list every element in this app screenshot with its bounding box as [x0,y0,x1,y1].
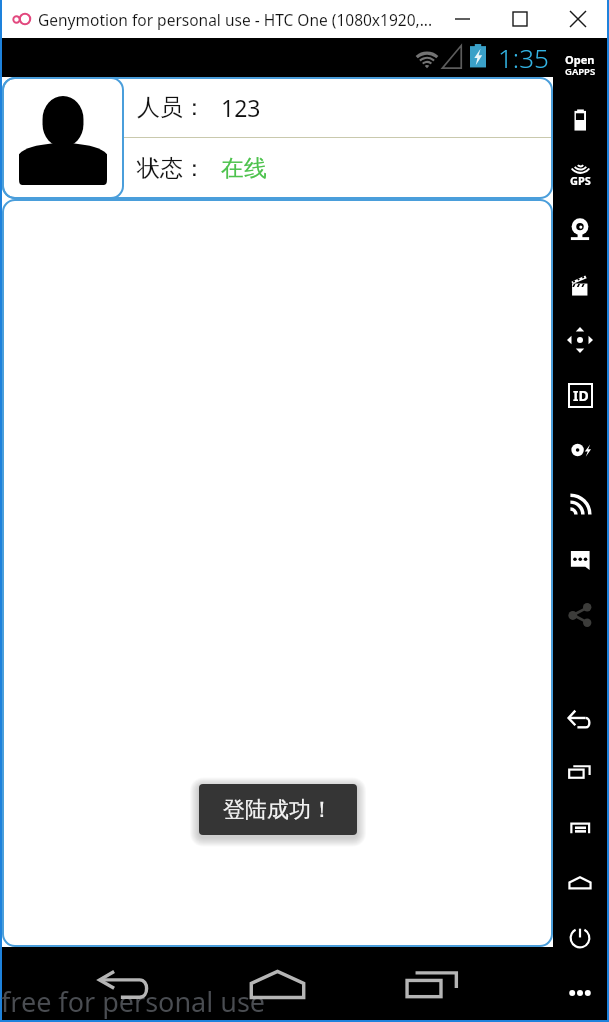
staticText: 在线 [221,154,267,183]
button[interactable]: Messages [553,533,607,587]
staticText: Genymotion for personal use - HTC One (1… [38,9,433,30]
button[interactable]: GPS [553,149,607,203]
button[interactable]: Power [553,911,607,965]
button[interactable]: Home [553,856,607,910]
button[interactable]: Recents [553,745,607,799]
staticText: 登陆成功！ [223,796,333,824]
staticText: 人员： [137,93,206,122]
staticText: GAPPS [565,65,596,78]
button[interactable]: Share [553,588,607,642]
button[interactable]: More [553,966,607,1020]
button[interactable]: Recents [386,947,476,1020]
button[interactable]: Battery [553,93,607,147]
button[interactable]: Menu [553,801,607,855]
staticText: 1:35 [498,40,549,75]
staticText: ID [573,386,589,405]
button[interactable]: Disk IO [553,423,607,477]
staticText: Open [565,52,595,67]
button[interactable]: Avatar [2,77,124,199]
button[interactable]: Home [232,947,322,1020]
button[interactable]: Back [553,692,607,746]
button[interactable]: Close [549,0,607,38]
staticText: 状态： [137,154,206,183]
button[interactable]: Camera [553,202,607,256]
button[interactable]: Identifiers [553,368,607,422]
staticText: GPS [570,173,591,188]
button[interactable]: Video [553,258,607,312]
staticText: 123 [221,92,261,123]
button[interactable]: Maximize [491,0,549,38]
button[interactable]: Back [78,947,168,1020]
button[interactable]: Minimize [433,0,491,38]
staticText: free for personal use [1,983,266,1020]
button[interactable]: Move [553,313,607,367]
button[interactable]: Network [553,478,607,532]
